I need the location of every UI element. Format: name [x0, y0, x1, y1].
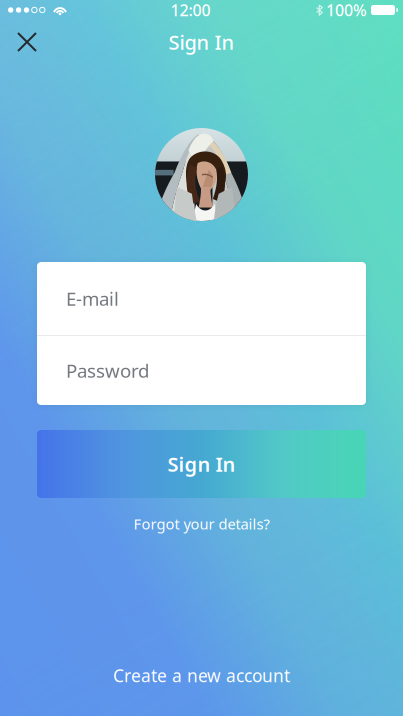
button[interactable]: Password — [37, 336, 366, 405]
button[interactable]: Close — [6, 21, 48, 63]
staticText: 12:00 — [170, 0, 210, 21]
button[interactable]: Sign In — [37, 430, 366, 498]
staticText: Sign In — [167, 451, 235, 477]
staticText: E-mail — [66, 286, 119, 311]
staticText: 100% — [326, 0, 367, 21]
button[interactable]: Forgot your details? — [119, 508, 283, 539]
staticText: Password — [66, 358, 149, 383]
staticText: Forgot your details? — [133, 514, 269, 533]
button[interactable]: E-mail — [37, 262, 366, 335]
staticText: Create a new account — [113, 664, 290, 687]
staticText: Sign In — [168, 29, 234, 55]
button[interactable]: Create a new account — [95, 654, 308, 697]
